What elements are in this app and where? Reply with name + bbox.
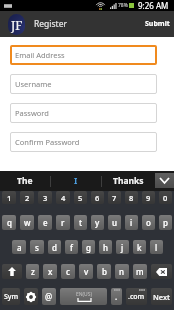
staticText: Register bbox=[34, 18, 67, 30]
staticText: Confirm Password bbox=[15, 137, 80, 147]
button[interactable]: 7 bbox=[108, 191, 121, 204]
button[interactable]: x bbox=[43, 264, 57, 279]
staticText: w bbox=[24, 217, 31, 228]
button[interactable]: More suggestions bbox=[155, 173, 174, 188]
button[interactable]: l bbox=[150, 240, 163, 254]
button[interactable]: Confirm Password bbox=[10, 132, 157, 152]
button[interactable]: e bbox=[38, 215, 52, 230]
button[interactable]: 6 bbox=[91, 191, 104, 204]
button[interactable]: 4 bbox=[56, 191, 70, 204]
staticText: Email Address bbox=[15, 50, 65, 60]
staticText: 2 bbox=[25, 193, 30, 203]
staticText: .com bbox=[128, 292, 145, 302]
staticText: h bbox=[103, 242, 109, 253]
staticText: 8 bbox=[129, 193, 134, 203]
staticText: i bbox=[130, 217, 133, 228]
button[interactable]: s bbox=[30, 240, 44, 254]
staticText: z bbox=[31, 266, 35, 277]
button[interactable]: t bbox=[74, 215, 87, 230]
staticText: 78% bbox=[118, 2, 128, 9]
button[interactable]: .com bbox=[126, 288, 147, 305]
staticText: @ bbox=[45, 291, 53, 302]
staticText: c bbox=[66, 266, 70, 277]
button[interactable]: @ bbox=[42, 288, 56, 305]
button[interactable]: c bbox=[61, 264, 75, 279]
button[interactable]: u bbox=[108, 215, 121, 230]
staticText: 0 bbox=[163, 193, 168, 203]
staticText: b bbox=[102, 266, 107, 277]
button[interactable]: f bbox=[65, 240, 78, 254]
staticText: 4 bbox=[61, 193, 66, 203]
staticText: 3 bbox=[43, 193, 48, 203]
staticText: r bbox=[61, 217, 65, 228]
staticText: I bbox=[74, 175, 78, 187]
staticText: f bbox=[70, 242, 73, 253]
button[interactable]: . bbox=[111, 288, 122, 305]
button[interactable]: Email Address bbox=[10, 45, 157, 65]
button[interactable]: 0 bbox=[159, 191, 172, 204]
button[interactable]: p bbox=[159, 215, 172, 230]
button[interactable]: q bbox=[2, 215, 16, 230]
button[interactable]: z bbox=[26, 264, 39, 279]
staticText: JF bbox=[11, 17, 23, 33]
button[interactable]: o bbox=[142, 215, 155, 230]
button[interactable]: Shift bbox=[2, 264, 22, 279]
button[interactable]: v bbox=[79, 264, 93, 279]
button[interactable]: Username bbox=[10, 74, 157, 94]
button[interactable]: k bbox=[133, 240, 146, 254]
button[interactable]: h bbox=[99, 240, 112, 254]
button[interactable]: a bbox=[12, 240, 26, 254]
button[interactable]: Next bbox=[151, 288, 172, 305]
button[interactable]: Backspace bbox=[151, 264, 172, 279]
button[interactable]: 3 bbox=[38, 191, 52, 204]
button[interactable]: r bbox=[56, 215, 70, 230]
button[interactable]: App logo bbox=[8, 14, 25, 35]
staticText: e bbox=[43, 217, 48, 228]
staticText: g bbox=[86, 242, 91, 253]
staticText: 5 bbox=[78, 193, 83, 203]
button[interactable]: i bbox=[125, 215, 138, 230]
staticText: j bbox=[121, 242, 124, 253]
staticText: 9 bbox=[146, 193, 151, 203]
staticText: x bbox=[48, 266, 53, 277]
staticText: 1 bbox=[7, 193, 12, 203]
button[interactable]: w bbox=[20, 215, 34, 230]
button[interactable]: d bbox=[48, 240, 61, 254]
button[interactable]: I bbox=[51, 171, 101, 191]
staticText: p bbox=[163, 217, 168, 228]
button[interactable]: Settings bbox=[24, 288, 38, 305]
staticText: Next bbox=[153, 292, 170, 302]
button[interactable]: y bbox=[91, 215, 104, 230]
staticText: Password bbox=[15, 108, 49, 118]
button[interactable]: Submit bbox=[142, 14, 170, 34]
button[interactable]: Space bbox=[60, 288, 107, 305]
staticText: d bbox=[52, 242, 57, 253]
staticText: u bbox=[112, 217, 118, 228]
staticText: y bbox=[95, 217, 100, 228]
button[interactable]: g bbox=[82, 240, 95, 254]
button[interactable]: 1 bbox=[2, 191, 16, 204]
button[interactable]: 2 bbox=[20, 191, 34, 204]
staticText: EN(US) bbox=[76, 291, 92, 298]
button[interactable]: 9 bbox=[142, 191, 155, 204]
button[interactable]: 5 bbox=[74, 191, 87, 204]
button[interactable]: Sym bbox=[2, 288, 20, 305]
staticText: Username bbox=[15, 79, 52, 89]
staticText: 9:26 AM bbox=[138, 0, 169, 11]
button[interactable]: j bbox=[116, 240, 129, 254]
staticText: Thanks bbox=[113, 175, 144, 187]
button[interactable]: 8 bbox=[125, 191, 138, 204]
button[interactable]: b bbox=[97, 264, 111, 279]
staticText: 6 bbox=[95, 193, 100, 203]
staticText: a bbox=[17, 242, 22, 253]
staticText: t bbox=[79, 217, 83, 228]
staticText: Sym bbox=[4, 292, 19, 302]
staticText: v bbox=[84, 266, 89, 277]
staticText: . bbox=[115, 291, 118, 302]
button[interactable]: m bbox=[133, 264, 147, 279]
button[interactable]: Password bbox=[10, 103, 157, 123]
button[interactable]: n bbox=[115, 264, 129, 279]
staticText: s bbox=[35, 242, 39, 253]
button[interactable]: Thanks bbox=[102, 171, 155, 191]
button[interactable]: The bbox=[0, 171, 50, 191]
